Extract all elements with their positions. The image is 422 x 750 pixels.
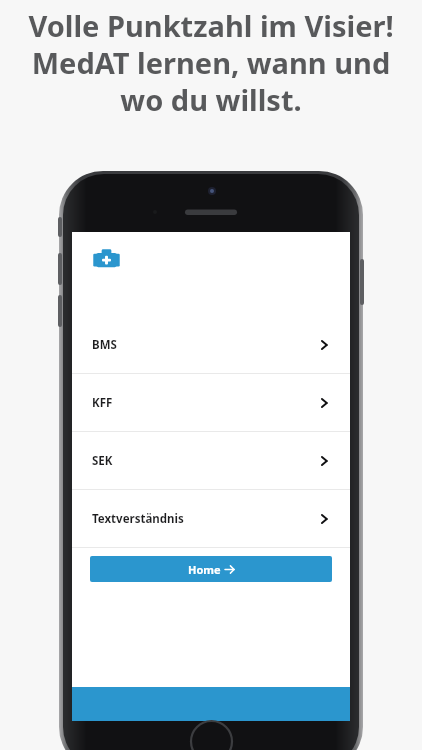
staticText: SEK bbox=[92, 453, 113, 469]
staticText: Home bbox=[188, 562, 221, 577]
staticText: KFF bbox=[92, 395, 113, 411]
button[interactable]: Textverständnis bbox=[72, 490, 350, 547]
button[interactable]: Home bbox=[90, 556, 332, 582]
button[interactable]: MedAT first aid logo bbox=[93, 245, 120, 272]
staticText: Textverständnis bbox=[92, 511, 184, 527]
staticText: BMS bbox=[92, 337, 117, 353]
button[interactable]: BMS bbox=[72, 316, 350, 373]
staticText: Volle Punktzahl im Visier! MedAT lernen,… bbox=[20, 6, 402, 120]
button[interactable]: Bottom navigation bar bbox=[72, 687, 350, 721]
button[interactable]: KFF bbox=[72, 374, 350, 431]
button[interactable]: SEK bbox=[72, 432, 350, 489]
